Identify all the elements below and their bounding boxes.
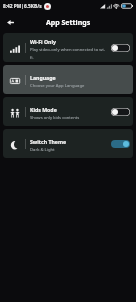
button[interactable]: Switch off [111, 108, 130, 116]
staticText: App Settings [46, 18, 91, 28]
staticText: Shows only kids contents [30, 115, 80, 121]
staticText: Choose your App Language [30, 83, 85, 89]
button[interactable]: Language [3, 65, 133, 94]
button[interactable]: Switch off [111, 44, 130, 52]
button[interactable]: Switch Theme [3, 129, 133, 158]
button[interactable]: Back [3, 15, 17, 29]
staticText: Kids Mode [30, 106, 57, 113]
staticText: Play video-only when connected to wi-fi. [30, 47, 106, 61]
button[interactable]: Switch on [111, 140, 130, 148]
staticText: 8:42 PM|6.5KB/s [3, 3, 42, 10]
staticText: Wi-Fi Only [30, 38, 56, 45]
staticText: Switch Theme [30, 138, 67, 145]
staticText: Language [30, 74, 56, 81]
staticText: Dark & Light [30, 147, 55, 153]
button[interactable]: Wi-Fi Only [3, 33, 133, 62]
button[interactable]: Kids Mode [3, 97, 133, 126]
